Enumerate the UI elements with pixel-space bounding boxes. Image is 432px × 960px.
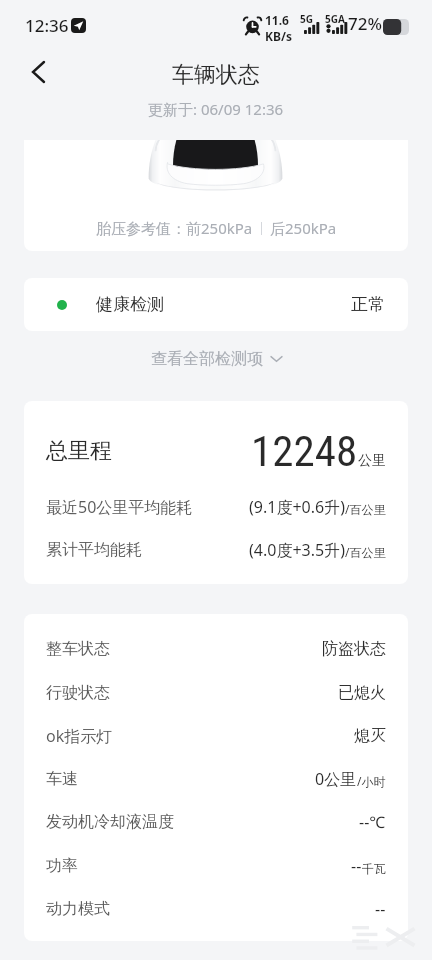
staticText: ok指示灯 (46, 725, 113, 747)
staticText: 熄灭 (354, 726, 386, 746)
staticText: 动力模式 (46, 899, 110, 919)
staticText: 车辆状态 (172, 61, 260, 89)
staticText: 防盗状态 (322, 639, 386, 659)
staticText: 查看全部检测项 (151, 349, 263, 369)
button[interactable]: 查看全部检测项 (0, 345, 432, 373)
staticText: /小时 (357, 773, 386, 789)
staticText: 11.6 (265, 12, 289, 28)
staticText: -- (351, 855, 362, 877)
staticText: 已熄火 (338, 683, 386, 703)
button[interactable]: 健康检测 (24, 278, 408, 331)
staticText: /百公里 (345, 501, 386, 517)
staticText: 功率 (46, 856, 78, 876)
staticText: 0公里 (315, 768, 357, 790)
staticText: (4.0度+3.5升) (249, 539, 345, 561)
staticText: 最近50公里平均能耗 (46, 496, 193, 518)
staticText: 公里 (358, 452, 386, 470)
staticText: 后250kPa (270, 218, 337, 238)
staticText: 整车状态 (46, 639, 110, 659)
staticText: 更新于: 06/09 12:36 (148, 99, 284, 119)
staticText: 正常 (351, 294, 385, 315)
button[interactable]: Back (18, 52, 58, 92)
staticText: (9.1度+0.6升) (249, 496, 345, 518)
staticText: 胎压参考值：前250kPa (96, 218, 253, 238)
staticText: 5G (300, 12, 313, 26)
staticText: 总里程 (46, 437, 112, 465)
staticText: 车速 (46, 769, 78, 789)
staticText: KB/s (265, 28, 292, 44)
staticText: 健康检测 (96, 294, 164, 315)
staticText: 72% (348, 12, 382, 35)
staticText: 千瓦 (362, 861, 386, 876)
staticText: 行驶状态 (46, 683, 110, 703)
staticText: 发动机冷却液温度 (46, 812, 174, 832)
staticText: 12248 (251, 426, 358, 476)
staticText: -- (375, 898, 386, 920)
staticText: 5GA (325, 12, 345, 26)
staticText: 12:36 (25, 14, 69, 37)
staticText: 累计平均能耗 (46, 540, 142, 560)
staticText: --℃ (359, 811, 386, 833)
staticText: /百公里 (345, 544, 386, 560)
